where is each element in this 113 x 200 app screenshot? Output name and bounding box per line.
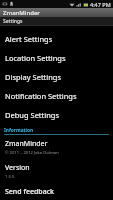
staticText: 1.5.5 — [5, 174, 15, 180]
staticText: ZmanMinder — [5, 139, 48, 149]
button[interactable]: Location Settings — [0, 48, 113, 67]
button[interactable]: ZmanMinder — [0, 8, 113, 17]
button[interactable]: Display Settings — [0, 67, 113, 86]
staticText: Send feedback — [5, 187, 54, 197]
button[interactable]: ZmanMinder — [0, 135, 113, 159]
staticText: 4:47 PM — [90, 1, 111, 8]
button[interactable]: Alert Settings — [0, 29, 113, 48]
button[interactable]: Notification Settings — [0, 86, 113, 105]
staticText: Debug Settings — [5, 110, 60, 120]
button[interactable]: Send feedback — [0, 183, 113, 200]
staticText: Version — [5, 163, 30, 173]
button[interactable]: Version — [0, 159, 113, 183]
staticText: ZmanMinder — [3, 9, 40, 17]
button[interactable]: Settings — [0, 17, 113, 25]
staticText: Alert Settings — [5, 34, 53, 44]
staticText: Notification Settings — [5, 91, 77, 101]
staticText: © 2011 – 2012 Jake Dolman — [5, 150, 59, 156]
staticText: Location Settings — [5, 53, 66, 63]
staticText: Display Settings — [5, 72, 62, 82]
button[interactable]: Debug Settings — [0, 105, 113, 124]
staticText: Information — [4, 127, 34, 134]
staticText: Settings — [3, 18, 23, 25]
